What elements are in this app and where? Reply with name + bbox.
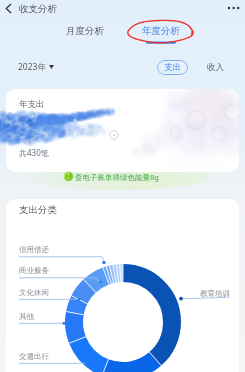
staticText: 年度分析 xyxy=(142,25,180,37)
button[interactable]: 文化休闲 xyxy=(19,288,49,297)
button[interactable]: 年度分析 xyxy=(136,22,186,40)
staticText: 2023年 xyxy=(18,61,46,73)
staticText: 年支出 xyxy=(19,99,45,110)
button[interactable] xyxy=(20,169,210,185)
button[interactable]: Back xyxy=(1,0,19,18)
button[interactable]: 其他 xyxy=(19,312,34,321)
button[interactable]: 信用借还 xyxy=(19,245,49,254)
staticText: 支出 xyxy=(164,62,181,73)
button[interactable]: 月度分析 xyxy=(60,22,110,40)
staticText: 支出分类 xyxy=(19,204,57,216)
staticText: 查电子账单得绿色能量8g xyxy=(75,172,159,182)
button[interactable]: 教育培训 xyxy=(200,289,230,298)
staticText: 共430笔 xyxy=(19,147,49,158)
button[interactable]: More options xyxy=(224,0,242,16)
staticText: 月度分析 xyxy=(66,25,104,37)
button[interactable]: 2023年 xyxy=(18,60,54,74)
staticText: 收支分析 xyxy=(19,3,57,15)
button[interactable]: 收入 xyxy=(201,60,229,75)
staticText: 收入 xyxy=(207,62,224,73)
button[interactable]: 交通出行 xyxy=(19,352,49,361)
button[interactable]: 商业服务 xyxy=(19,266,49,275)
button[interactable]: 支出 xyxy=(157,60,188,75)
